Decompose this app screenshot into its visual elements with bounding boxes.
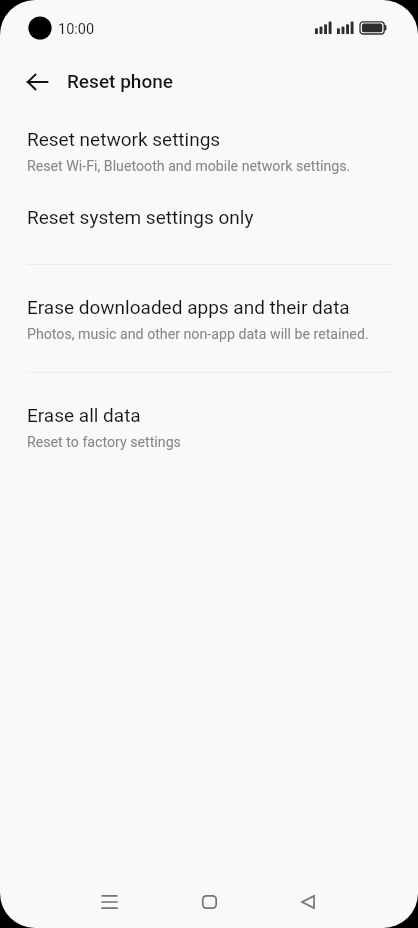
staticText: 10:00 bbox=[58, 21, 95, 38]
button[interactable]: Navigate up bbox=[17, 62, 57, 102]
button[interactable]: Erase all data bbox=[0, 399, 418, 461]
staticText: Reset phone bbox=[67, 70, 173, 92]
button[interactable]: Reset system settings only bbox=[0, 201, 418, 245]
staticText: Reset network settings bbox=[27, 128, 221, 150]
staticText: Reset to factory settings bbox=[27, 434, 181, 451]
staticText: Reset system settings only bbox=[27, 206, 254, 228]
staticText: Photos, music and other non-app data wil… bbox=[27, 326, 369, 343]
staticText: Erase downloaded apps and their data bbox=[27, 296, 350, 318]
button[interactable]: Erase downloaded apps and their data bbox=[0, 291, 418, 353]
button[interactable]: Back bbox=[284, 878, 332, 926]
staticText: Erase all data bbox=[27, 404, 141, 426]
button[interactable]: Recent apps bbox=[85, 878, 133, 926]
button[interactable]: Home bbox=[185, 878, 233, 926]
button[interactable]: Reset network settings bbox=[0, 123, 418, 185]
staticText: Reset Wi-Fi, Bluetooth and mobile networ… bbox=[27, 158, 351, 175]
